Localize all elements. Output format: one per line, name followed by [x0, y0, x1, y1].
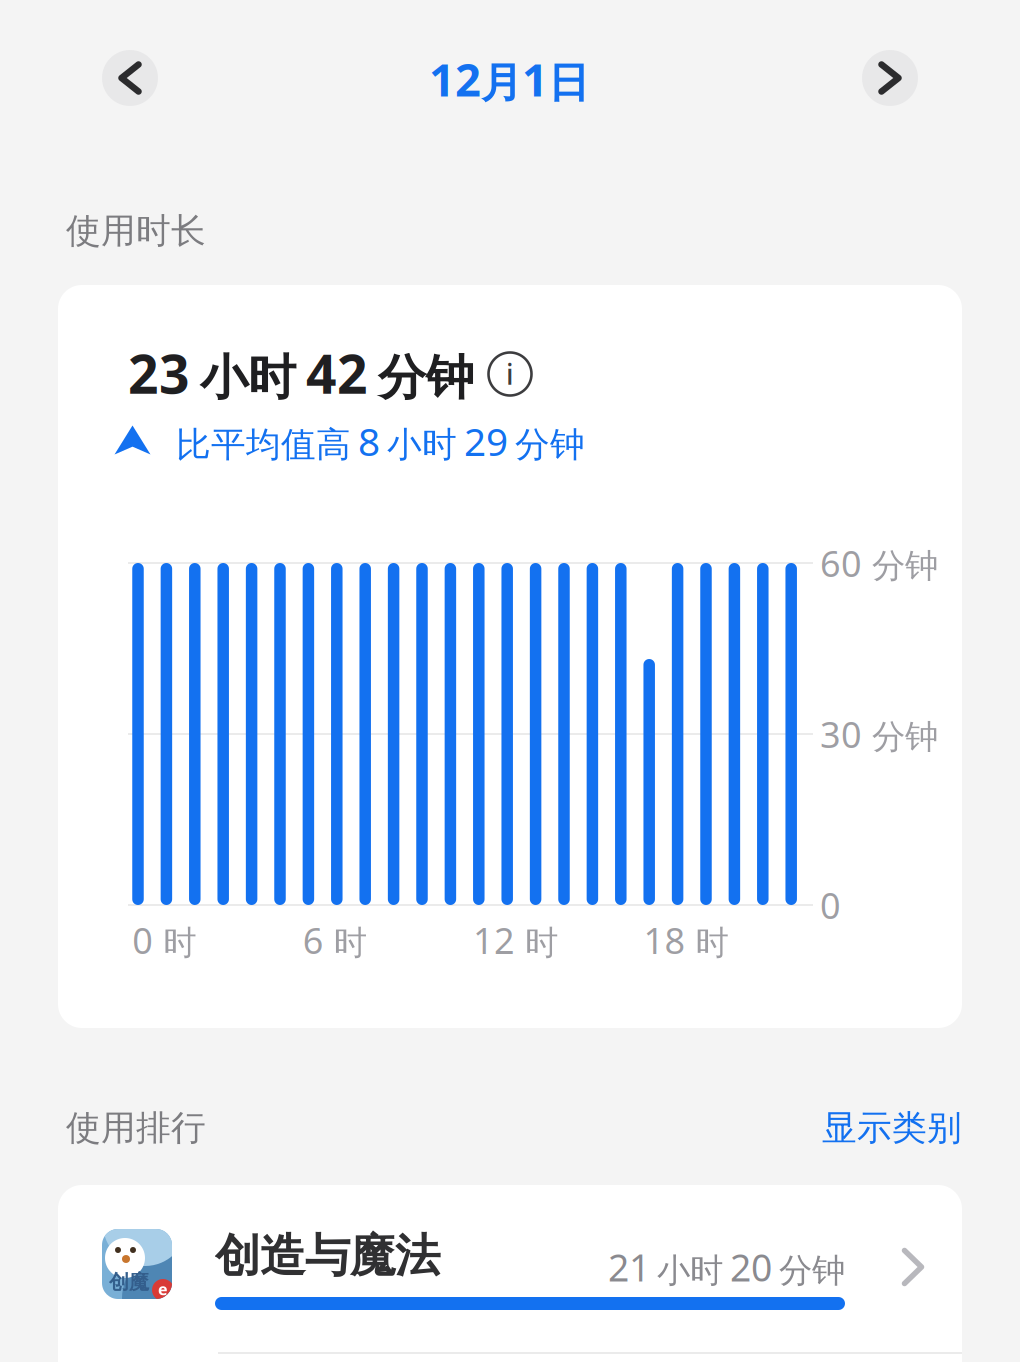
button[interactable]: 信息 [487, 351, 533, 397]
staticText: 18 时 [643, 916, 728, 964]
staticText: 使用排行 [66, 1107, 206, 1149]
staticText: 21 小时 20 分钟 [608, 1242, 845, 1292]
staticText: 显示类别 [822, 1107, 962, 1149]
staticText: 创造与魔法 [215, 1228, 440, 1284]
button[interactable]: 后一天 [862, 50, 918, 106]
staticText: 12 时 [473, 916, 558, 964]
button[interactable]: 显示类别 [822, 1107, 962, 1149]
staticText: e [158, 1278, 168, 1300]
staticText: 23 小时 42 分钟 [128, 338, 474, 408]
staticText: 12月1日 [429, 49, 589, 109]
staticText: 使用时长 [66, 210, 206, 252]
staticText: 60 分钟 [820, 539, 938, 587]
staticText: i [506, 355, 514, 393]
staticText: 0 [820, 881, 841, 929]
button[interactable]: 创魔 [58, 1185, 962, 1353]
staticText: 0 时 [132, 916, 196, 964]
staticText: 创魔 [109, 1270, 149, 1294]
button[interactable]: 前一天 [102, 50, 158, 106]
staticText: 30 分钟 [820, 710, 938, 758]
staticText: 比平均值高 8 小时 29 分钟 [176, 415, 585, 467]
staticText: 6 时 [303, 916, 367, 964]
